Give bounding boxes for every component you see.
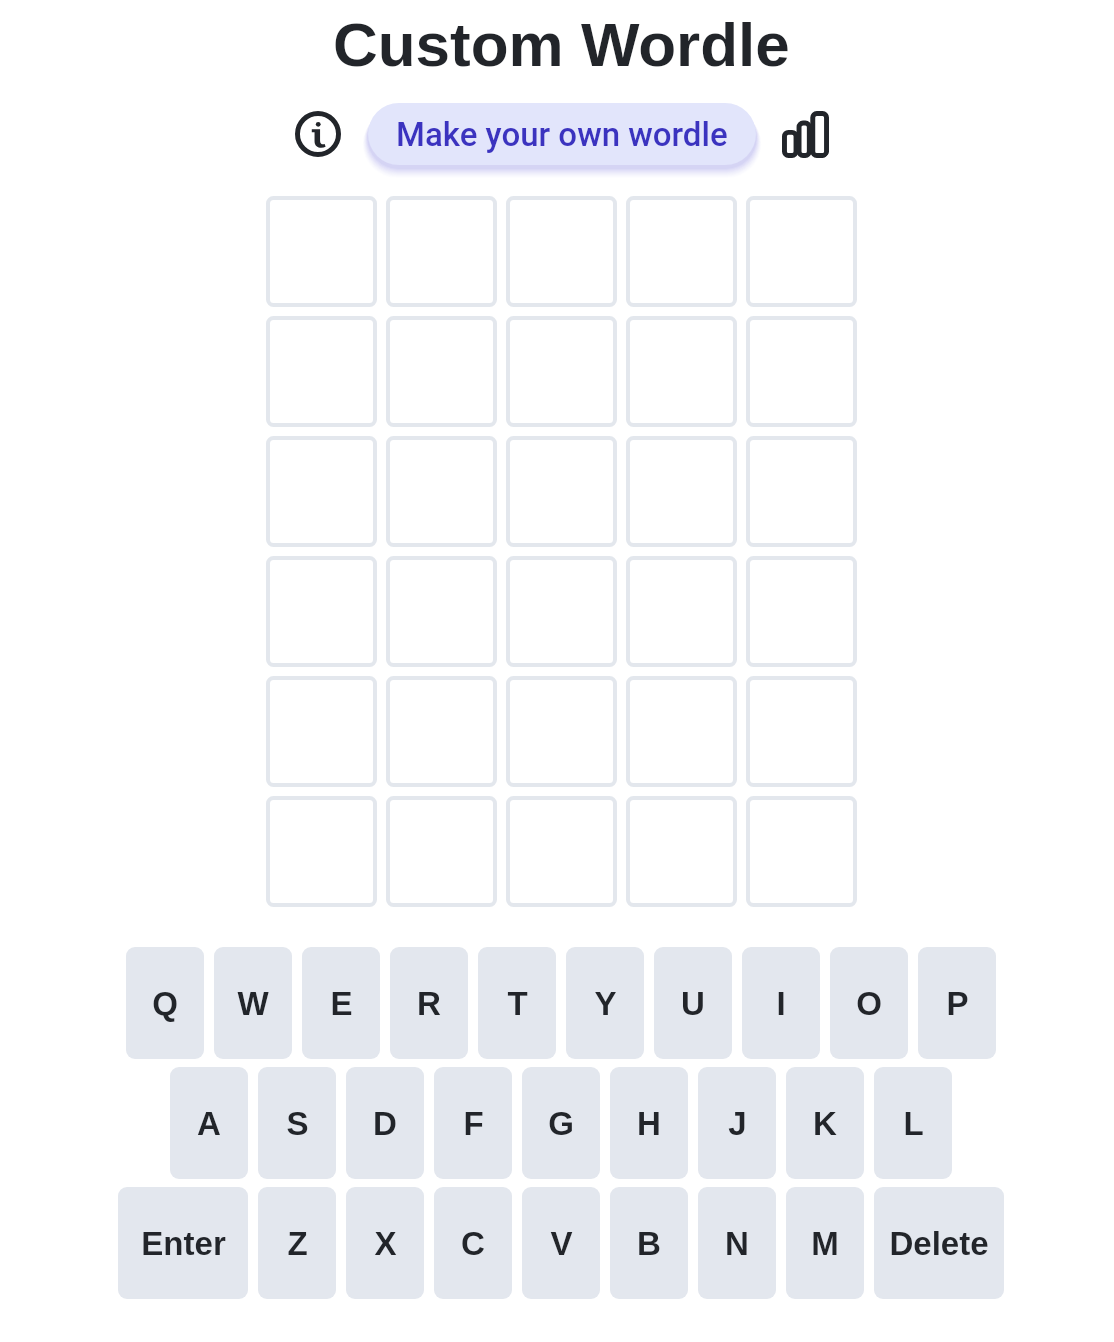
staticText: T [507, 985, 528, 1022]
staticText: B [637, 1225, 661, 1262]
staticText: Make your own wordle [396, 115, 728, 154]
staticText: E [330, 985, 353, 1022]
button[interactable]: D [346, 1067, 424, 1179]
button[interactable]: Delete [874, 1187, 1004, 1299]
staticText: K [813, 1105, 837, 1142]
staticText: I [776, 985, 786, 1022]
button[interactable]: P [918, 947, 996, 1059]
button[interactable]: Make your own wordle [368, 103, 756, 165]
staticText: S [286, 1105, 309, 1142]
button[interactable]: A [170, 1067, 248, 1179]
button[interactable]: Statistics [774, 103, 836, 165]
staticText: X [374, 1225, 397, 1262]
staticText: O [856, 985, 882, 1022]
staticText: Z [287, 1225, 308, 1262]
staticText: Q [152, 985, 178, 1022]
button[interactable]: J [698, 1067, 776, 1179]
button[interactable]: X [346, 1187, 424, 1299]
button[interactable]: R [390, 947, 468, 1059]
staticText: C [461, 1225, 485, 1262]
staticText: L [903, 1105, 924, 1142]
button[interactable]: M [786, 1187, 864, 1299]
staticText: R [417, 985, 441, 1022]
button[interactable]: G [522, 1067, 600, 1179]
staticText: D [373, 1105, 397, 1142]
button[interactable]: Y [566, 947, 644, 1059]
staticText: Custom Wordle [333, 10, 790, 79]
button[interactable]: N [698, 1187, 776, 1299]
button[interactable]: K [786, 1067, 864, 1179]
button[interactable]: L [874, 1067, 952, 1179]
staticText: H [637, 1105, 661, 1142]
button[interactable]: V [522, 1187, 600, 1299]
staticText: U [681, 985, 705, 1022]
staticText: N [725, 1225, 749, 1262]
staticText: Y [594, 985, 617, 1022]
button[interactable]: Z [258, 1187, 336, 1299]
staticText: Delete [889, 1225, 989, 1262]
button[interactable]: H [610, 1067, 688, 1179]
button[interactable]: U [654, 947, 732, 1059]
button[interactable]: How to play [287, 103, 349, 165]
button[interactable]: S [258, 1067, 336, 1179]
button[interactable]: W [214, 947, 292, 1059]
button[interactable]: E [302, 947, 380, 1059]
staticText: A [197, 1105, 221, 1142]
button[interactable]: I [742, 947, 820, 1059]
button[interactable]: B [610, 1187, 688, 1299]
staticText: G [548, 1105, 574, 1142]
staticText: W [237, 985, 269, 1022]
button[interactable]: T [478, 947, 556, 1059]
button[interactable]: O [830, 947, 908, 1059]
staticText: P [946, 985, 969, 1022]
button[interactable]: C [434, 1187, 512, 1299]
staticText: J [728, 1105, 747, 1142]
button[interactable]: Q [126, 947, 204, 1059]
staticText: F [463, 1105, 484, 1142]
staticText: V [550, 1225, 573, 1262]
button[interactable]: Enter [118, 1187, 248, 1299]
button[interactable]: F [434, 1067, 512, 1179]
staticText: M [811, 1225, 839, 1262]
staticText: Enter [141, 1225, 226, 1262]
